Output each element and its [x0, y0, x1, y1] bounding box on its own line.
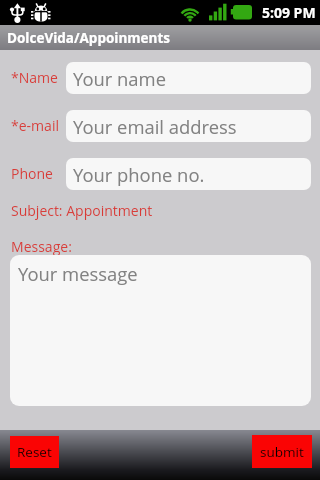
- staticText: Your name: [73, 66, 167, 91]
- staticText: submit: [260, 443, 304, 461]
- staticText: Your message: [18, 261, 138, 286]
- staticText: Message:: [11, 237, 72, 256]
- staticText: Your email address: [73, 114, 237, 139]
- staticText: *e-mail: [11, 116, 59, 135]
- button[interactable]: Reset: [10, 436, 59, 468]
- staticText: Phone: [11, 164, 53, 183]
- button[interactable]: E-mail: [66, 110, 311, 142]
- button[interactable]: Name: [66, 62, 311, 94]
- staticText: Your phone no.: [73, 162, 205, 187]
- staticText: DolceVida/Appoinments: [7, 29, 170, 47]
- button[interactable]: Phone: [66, 158, 311, 190]
- staticText: Subject: Appointment: [11, 201, 153, 220]
- staticText: *Name: [11, 68, 58, 87]
- button[interactable]: submit: [252, 435, 312, 468]
- staticText: 5:09 PM: [262, 3, 316, 22]
- button[interactable]: Message: [10, 255, 311, 406]
- staticText: Reset: [17, 443, 52, 461]
